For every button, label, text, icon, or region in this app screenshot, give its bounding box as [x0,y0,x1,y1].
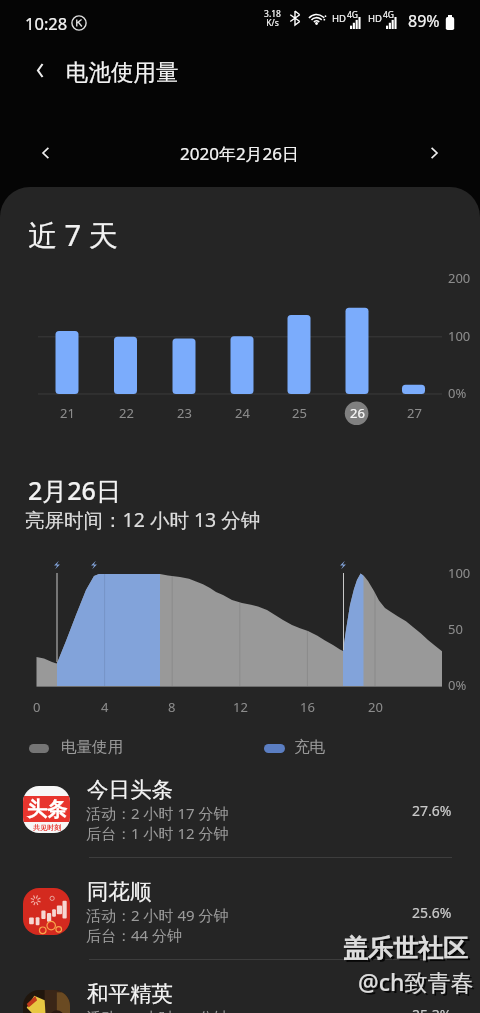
button[interactable]: 前一天 [24,131,68,175]
staticText: 2020年2月26日 [180,142,300,165]
staticText: 25.3% [412,1005,452,1013]
button[interactable]: 和平精英 [0,982,480,1013]
staticText: 0% [448,676,467,694]
staticText: 活动：2 小时 49 分钟 [86,905,229,925]
staticText: 10:28 [25,12,68,34]
staticText: 20 [368,698,383,716]
staticText: 同花顺 [87,878,152,905]
staticText: 24 [235,404,250,422]
staticText: 8 [168,698,176,716]
staticText: 4G [383,9,395,21]
staticText: 电池使用量 [66,58,179,86]
staticText: 4 [101,698,109,716]
staticText: 100 [448,327,471,345]
staticText: 共见时刻 [33,823,61,832]
staticText: 和平精英 [87,980,173,1007]
staticText: 89% [408,10,440,32]
staticText: 电量使用 [61,737,123,757]
staticText: 25 [292,404,307,422]
staticText: 后台：1 小时 12 分钟 [86,823,229,843]
staticText: 50 [448,620,463,638]
staticText: 2月26日 [28,473,121,507]
staticText: 12 [233,698,248,716]
staticText: 22 [119,404,134,422]
staticText: 近 7 天 [28,215,118,255]
staticText: 亮屏时间：12 小时 13 分钟 [25,506,261,533]
staticText: 27.6% [412,801,452,820]
staticText: 25.6% [412,903,452,922]
staticText: 16 [300,698,315,716]
staticText: 26 [350,404,365,422]
staticText: HD [332,12,346,25]
staticText: 充电 [294,737,325,757]
staticText: 21 [60,404,75,422]
staticText: 100 [448,564,471,582]
staticText: 0% [448,384,467,402]
staticText: 27 [407,404,422,422]
staticText: 活动：1 小时 10 分钟 [86,1007,229,1013]
staticText: 活动：2 小时 17 分钟 [86,803,229,823]
staticText: 200 [448,269,471,287]
staticText: HD [368,12,382,25]
staticText: 头条 [27,797,67,822]
staticText: 4G [347,9,359,21]
staticText: 盖乐世社区 [343,933,468,964]
button[interactable]: 返回 [16,46,64,94]
button[interactable]: 同花顺 [0,880,480,982]
staticText: 23 [177,404,192,422]
button[interactable]: 后一天 [412,131,456,175]
staticText: 后台：44 分钟 [86,925,183,945]
button[interactable]: 头条 [0,778,480,880]
staticText: 3.18 K/s [264,8,281,29]
staticText: @ch致青春 [358,966,474,997]
staticText: 0 [33,698,41,716]
staticText: 今日头条 [87,776,173,803]
